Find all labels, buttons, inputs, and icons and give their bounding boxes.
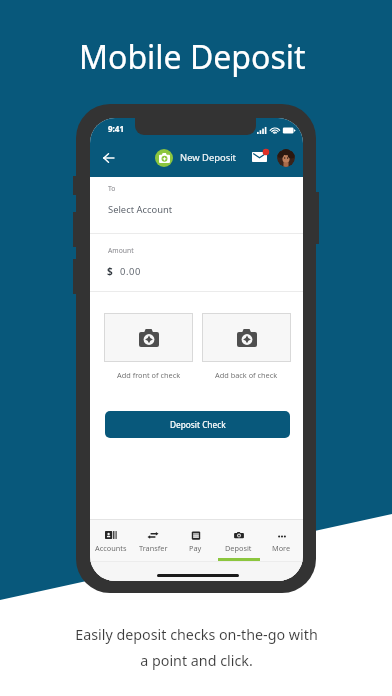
staticText: $ xyxy=(107,264,113,278)
staticText: Add back of check xyxy=(215,370,278,380)
button[interactable]: Back xyxy=(96,146,120,170)
staticText: Easily deposit checks on-the-go with a p… xyxy=(75,625,318,670)
staticText: Amount xyxy=(108,246,134,255)
staticText: Mobile Deposit xyxy=(79,35,306,79)
button[interactable]: To xyxy=(90,178,303,232)
staticText: Accounts xyxy=(95,543,127,553)
button[interactable]: Profile xyxy=(277,149,295,167)
staticText: Pay xyxy=(189,543,202,553)
staticText: To xyxy=(108,184,116,193)
staticText: More xyxy=(272,543,291,553)
button[interactable]: Accounts xyxy=(90,520,132,561)
staticText: New Deposit xyxy=(180,151,236,164)
button[interactable]: Add back of check xyxy=(202,313,291,362)
staticText: Add front of check xyxy=(117,370,181,380)
button[interactable]: Add front of check xyxy=(104,313,193,362)
button[interactable]: Deposit Check xyxy=(105,411,290,438)
button[interactable]: More xyxy=(260,520,303,561)
button[interactable]: Deposit xyxy=(217,520,260,561)
staticText: 9:41 xyxy=(108,123,124,134)
button[interactable]: Amount xyxy=(90,236,303,290)
staticText: Select Account xyxy=(108,203,173,216)
staticText: Deposit xyxy=(225,543,252,553)
staticText: Transfer xyxy=(139,543,168,553)
button[interactable]: Transfer xyxy=(132,520,174,561)
staticText: 0.00 xyxy=(120,265,142,278)
button[interactable]: Pay xyxy=(174,520,217,561)
staticText: Deposit Check xyxy=(170,419,226,430)
button[interactable]: Messages xyxy=(248,148,270,168)
